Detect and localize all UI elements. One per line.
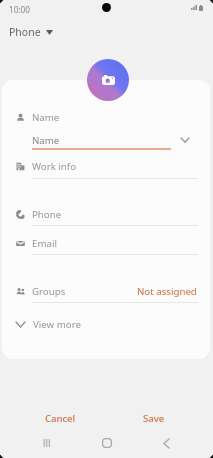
staticText: View more bbox=[33, 318, 81, 331]
button[interactable]: Email bbox=[2, 232, 210, 254]
staticText: Phone bbox=[9, 25, 41, 39]
button[interactable]: Expand name bbox=[177, 132, 193, 148]
staticText: Groups bbox=[32, 285, 66, 298]
staticText: Name bbox=[32, 111, 60, 124]
button[interactable]: Recents bbox=[35, 431, 59, 455]
button[interactable]: Work info bbox=[2, 155, 210, 177]
staticText: Cancel bbox=[45, 412, 76, 425]
button[interactable]: View more bbox=[2, 314, 210, 334]
staticText: Phone bbox=[32, 208, 62, 221]
button[interactable]: Cancel bbox=[38, 407, 83, 429]
staticText: Save bbox=[143, 412, 165, 425]
staticText: Email bbox=[32, 237, 57, 250]
button[interactable]: Groups bbox=[2, 280, 210, 302]
button[interactable]: Save bbox=[134, 407, 174, 429]
staticText: 10:00 bbox=[9, 4, 30, 15]
button[interactable]: Change photo bbox=[87, 59, 129, 101]
button[interactable]: Not assigned bbox=[122, 282, 197, 300]
button[interactable]: Name bbox=[32, 131, 172, 149]
button[interactable]: Back bbox=[154, 431, 178, 455]
button[interactable]: Home bbox=[95, 431, 119, 455]
staticText: Not assigned bbox=[137, 285, 197, 298]
button[interactable]: Name bbox=[2, 106, 210, 128]
staticText: Name bbox=[32, 134, 60, 147]
staticText: Work info bbox=[32, 160, 77, 173]
button[interactable]: Phone bbox=[9, 25, 53, 39]
button[interactable]: Phone bbox=[2, 203, 210, 225]
